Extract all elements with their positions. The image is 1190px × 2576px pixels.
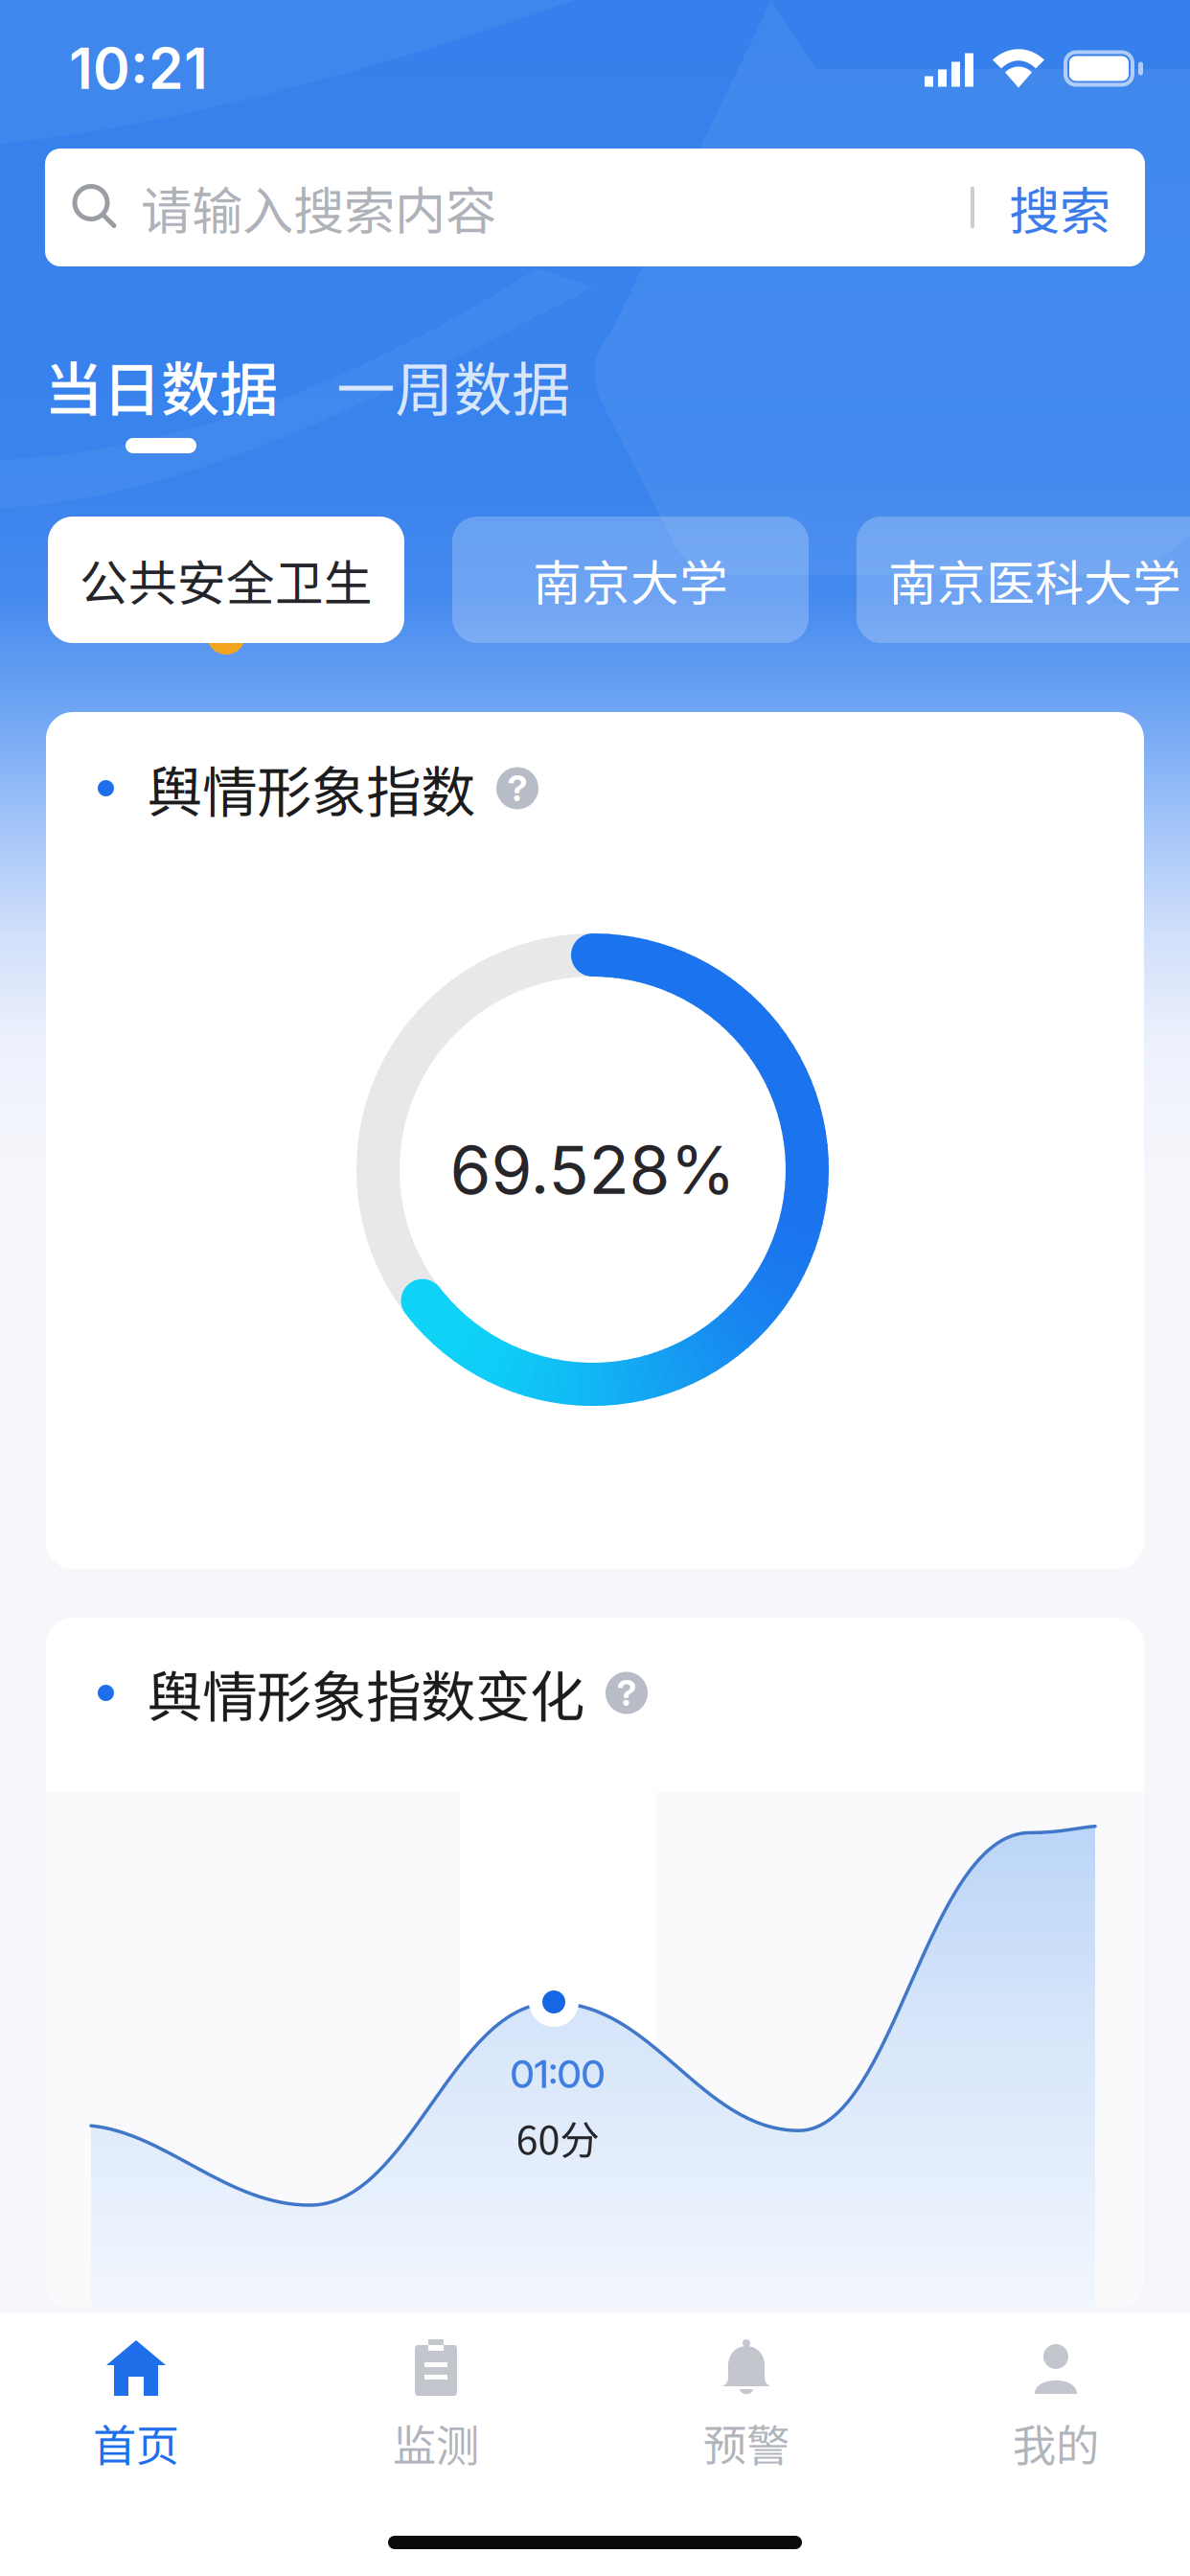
staticText: 当日数据	[44, 343, 278, 428]
staticText: 01:00	[510, 2051, 605, 2097]
button[interactable]: 监测	[271, 2313, 601, 2491]
button[interactable]: 搜索	[974, 170, 1145, 244]
staticText: 搜索	[1009, 170, 1110, 244]
button[interactable]: 南京大学	[452, 517, 809, 643]
staticText: 60分	[516, 2109, 599, 2166]
button[interactable]: 一周数据	[278, 354, 570, 417]
staticText: ?	[507, 767, 527, 810]
staticText: 首页	[93, 2411, 179, 2474]
staticText: 一周数据	[336, 343, 570, 428]
staticText: 10:21	[69, 34, 208, 103]
staticText: 舆情形象指数变化	[148, 1653, 584, 1733]
staticText: 我的	[1013, 2411, 1099, 2474]
button[interactable]: 南京医科大学	[857, 517, 1190, 643]
button[interactable]: 我的	[892, 2313, 1190, 2491]
staticText: 南京医科大学	[888, 545, 1181, 615]
staticText: 监测	[393, 2411, 479, 2474]
staticText: 舆情形象指数	[148, 748, 475, 828]
staticText: 69.528%	[450, 1129, 735, 1210]
button[interactable]: 公共安全卫生	[48, 517, 404, 643]
button[interactable]: 当日数据	[44, 354, 278, 453]
staticText: 预警	[703, 2411, 790, 2474]
staticText: 请输入搜索内容	[141, 170, 496, 244]
staticText: 公共安全卫生	[80, 545, 373, 615]
staticText: 南京大学	[533, 545, 728, 615]
staticText: ?	[617, 1671, 637, 1715]
button[interactable]: 预警	[601, 2313, 892, 2491]
button[interactable]: 首页	[1, 2313, 271, 2491]
